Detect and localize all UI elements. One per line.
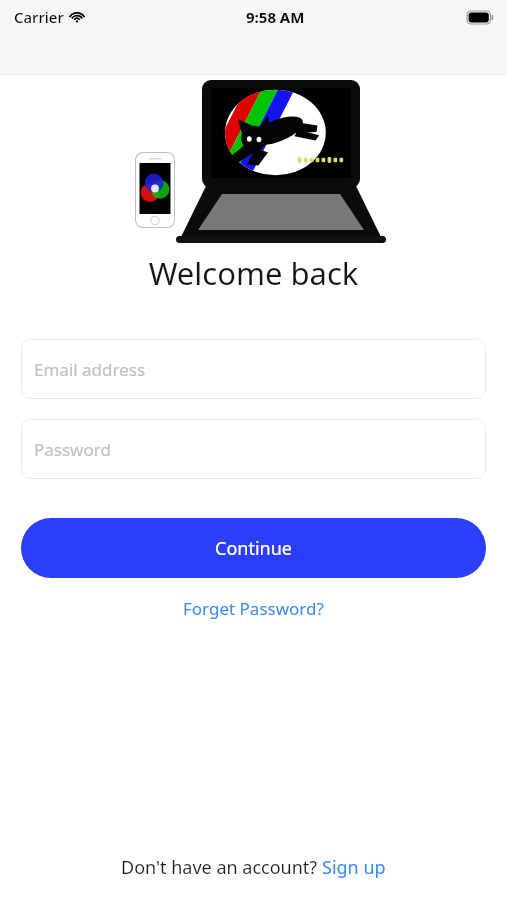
staticText: Don't have an account? (121, 855, 322, 880)
other: Battery (467, 11, 493, 24)
button[interactable]: Forget Password? (169, 592, 338, 625)
button[interactable]: Password (21, 419, 486, 479)
button[interactable]: Sign up (322, 851, 386, 884)
staticText: Email address (34, 358, 146, 381)
staticText: Sign up (322, 855, 386, 880)
staticText: Forget Password? (183, 597, 324, 620)
staticText: 9:58 AM (246, 7, 305, 27)
button[interactable]: Email address (21, 339, 486, 399)
staticText: Continue (215, 536, 292, 561)
button[interactable]: Continue (21, 518, 486, 578)
other: Wi-Fi (69, 9, 85, 25)
staticText: Carrier (14, 7, 64, 27)
staticText: Welcome back (0, 252, 507, 294)
staticText: Password (34, 438, 111, 461)
